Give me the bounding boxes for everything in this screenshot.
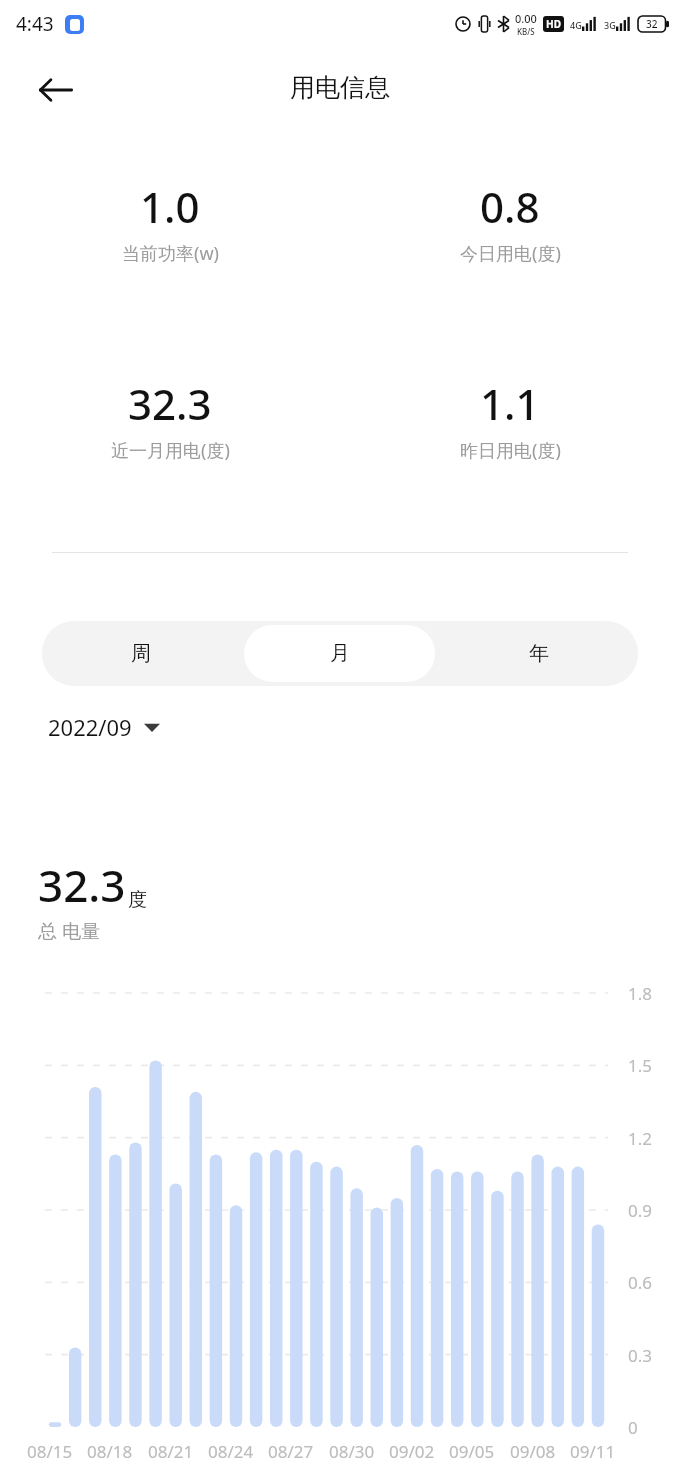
staticText: 09/02: [389, 1440, 435, 1463]
staticText: 年: [529, 641, 549, 666]
staticText: 08/21: [148, 1440, 194, 1463]
button[interactable]: 32.3: [0, 375, 340, 463]
staticText: 32.3: [128, 375, 212, 432]
button[interactable]: 年: [443, 625, 634, 682]
staticText: 4G: [570, 19, 582, 31]
staticText: 1.8: [628, 982, 653, 1005]
staticText: 4:43: [16, 11, 54, 37]
staticText: 今日用电(度): [460, 241, 561, 266]
staticText: 用电信息: [290, 72, 390, 103]
staticText: 1.2: [628, 1127, 653, 1150]
staticText: 1.1: [480, 375, 540, 432]
button[interactable]: 1.0: [0, 178, 340, 266]
staticText: KB/S: [517, 26, 535, 37]
staticText: 0.9: [628, 1199, 653, 1222]
staticText: 0.00: [515, 11, 537, 26]
staticText: 0.3: [628, 1344, 653, 1367]
button[interactable]: 0.8: [340, 178, 680, 266]
button[interactable]: 周: [46, 625, 236, 682]
staticText: 2022/09: [48, 712, 132, 742]
button[interactable]: 2022/09: [48, 712, 160, 742]
staticText: 当前功率(w): [122, 241, 219, 266]
staticText: 08/15: [27, 1440, 73, 1463]
staticText: 09/05: [449, 1440, 495, 1463]
staticText: 0: [628, 1416, 638, 1439]
staticText: 32: [646, 17, 658, 31]
staticText: 08/27: [268, 1440, 314, 1463]
staticText: 09/11: [570, 1440, 616, 1463]
staticText: 08/30: [329, 1440, 375, 1463]
staticText: 总 电量: [38, 918, 100, 944]
staticText: 度: [128, 888, 147, 912]
staticText: 32.3: [38, 855, 126, 915]
staticText: 0.8: [480, 178, 540, 235]
staticText: 1.5: [628, 1054, 653, 1077]
staticText: 0.6: [628, 1271, 653, 1294]
button[interactable]: Back: [28, 62, 84, 118]
staticText: HD: [546, 17, 561, 31]
button[interactable]: 1.1: [340, 375, 680, 463]
staticText: 昨日用电(度): [460, 438, 561, 463]
staticText: 3G: [604, 19, 616, 31]
staticText: 08/18: [87, 1440, 133, 1463]
staticText: 周: [131, 641, 151, 666]
staticText: 近一月用电(度): [111, 438, 230, 463]
staticText: 月: [330, 641, 350, 666]
staticText: 08/24: [208, 1440, 254, 1463]
button[interactable]: 月: [244, 625, 435, 682]
staticText: 1.0: [140, 178, 200, 235]
staticText: 09/08: [510, 1440, 556, 1463]
